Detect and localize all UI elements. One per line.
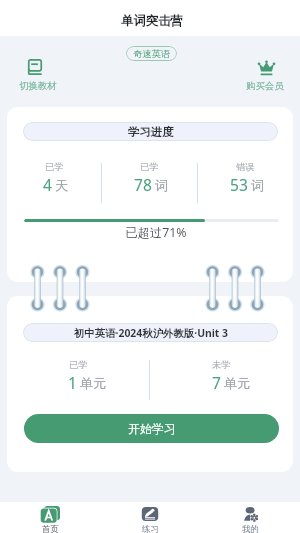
staticText: 53 [230,174,248,195]
staticText: 我的 [242,524,259,533]
staticText: 练习 [142,524,159,533]
button[interactable]: 首页 [0,502,100,533]
button[interactable]: 练习 [100,502,200,533]
staticText: 初中英语·2024秋沪外教版·Unit 3 [74,326,228,340]
other: 我的 [240,505,260,523]
staticText: 首页 [42,524,59,533]
other: 首页 [40,505,60,523]
staticText: 7 [212,372,221,393]
staticText: 1 [68,372,77,393]
button[interactable]: 开始学习 [24,414,279,443]
staticText: 词 [155,177,169,194]
staticText: 已学 [45,161,64,173]
staticText: 单词突击营 [121,13,183,29]
staticText: 学习进度 [128,125,174,139]
button[interactable]: 奇速英语 [126,46,177,61]
staticText: 词 [251,177,265,194]
staticText: 单元 [224,375,251,392]
staticText: 购买会员 [246,80,284,92]
button[interactable]: 切换教材 [17,56,59,94]
staticText: 未学 [212,359,231,371]
other: 练习 [140,505,160,523]
staticText: 已学 [69,359,88,371]
staticText: 78 [134,174,152,195]
button[interactable]: 购买会员 [246,56,288,94]
staticText: 4 [43,174,52,195]
staticText: 切换教材 [19,80,57,92]
staticText: 单元 [80,375,107,392]
staticText: 天 [55,177,69,194]
button[interactable]: 我的 [200,502,300,533]
staticText: 奇速英语 [133,48,171,60]
staticText: 已超过71% [13,224,293,241]
staticText: 开始学习 [128,421,176,436]
staticText: 已学 [140,161,159,173]
staticText: 错误 [236,161,255,173]
